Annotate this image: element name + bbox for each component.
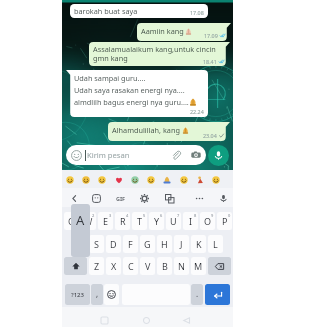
staticText: W xyxy=(84,215,93,227)
button[interactable]: Q xyxy=(64,212,79,230)
button[interactable]: X xyxy=(106,257,121,275)
button[interactable]: J xyxy=(174,235,189,253)
button[interactable]: O xyxy=(200,212,215,230)
button[interactable]: Recents xyxy=(97,313,111,327)
staticText: G xyxy=(144,238,151,250)
button[interactable]: P xyxy=(217,212,232,230)
button[interactable]: N xyxy=(174,257,189,275)
button[interactable]: U xyxy=(166,212,181,230)
staticText: V xyxy=(145,260,151,272)
button[interactable]: M xyxy=(191,257,206,275)
button[interactable]: Settings xyxy=(136,190,152,206)
button[interactable]: K xyxy=(191,235,206,253)
staticText: Alhamdulillah, kang xyxy=(112,125,180,135)
staticText: A xyxy=(76,211,85,229)
button[interactable]: G xyxy=(140,235,155,253)
button[interactable]: Voice input xyxy=(215,190,231,206)
button[interactable]: W xyxy=(81,212,96,230)
staticText: ?123 xyxy=(71,291,84,299)
staticText: 17.08 xyxy=(190,9,204,16)
button[interactable]: Assalamualaikum kang,untuk cincin gmn ka… xyxy=(89,42,230,66)
button[interactable]: Emoji xyxy=(145,174,156,185)
staticText: 22.24 xyxy=(190,108,204,115)
button[interactable]: Translate xyxy=(161,190,177,206)
button[interactable]: Emoji xyxy=(178,174,189,185)
button[interactable]: L xyxy=(208,235,223,253)
staticText: 3 xyxy=(109,213,112,218)
staticText: U xyxy=(170,215,177,227)
staticText: C xyxy=(128,260,134,272)
staticText: GIF xyxy=(116,195,126,202)
button[interactable]: Period xyxy=(191,284,203,305)
button[interactable]: Emoji xyxy=(64,174,75,185)
staticText: , xyxy=(96,288,99,299)
button[interactable]: Back xyxy=(66,190,82,206)
staticText: X xyxy=(111,260,117,272)
button[interactable]: Aamiin kang xyxy=(137,23,231,41)
staticText: 0 xyxy=(228,213,231,218)
staticText: 6 xyxy=(160,213,163,218)
button[interactable]: Emoji xyxy=(129,174,140,185)
staticText: L xyxy=(213,238,218,250)
button[interactable]: barokah buat saya xyxy=(70,4,208,18)
button[interactable]: Enter xyxy=(205,284,230,305)
button[interactable]: Voice message xyxy=(208,145,229,166)
button[interactable]: R xyxy=(115,212,130,230)
staticText: O xyxy=(204,215,212,227)
staticText: S xyxy=(94,238,99,250)
staticText: F xyxy=(128,238,133,250)
button[interactable]: F xyxy=(123,235,138,253)
button[interactable]: Stickers xyxy=(88,190,104,206)
button[interactable]: Emoji xyxy=(80,174,91,185)
button[interactable]: Comma xyxy=(91,284,103,305)
button[interactable]: Emoji xyxy=(194,174,205,185)
other: Camera xyxy=(191,150,201,160)
button[interactable]: Alhamdulillah, kang xyxy=(108,122,230,141)
button[interactable]: Shift xyxy=(64,257,87,275)
button[interactable]: Emoji xyxy=(161,174,172,185)
button[interactable]: Kirim pesan xyxy=(66,145,206,165)
staticText: 2 xyxy=(92,213,95,218)
button[interactable]: B xyxy=(157,257,172,275)
button[interactable]: S xyxy=(89,235,104,253)
button[interactable]: Y xyxy=(149,212,164,230)
staticText: Udah sampai guru.... xyxy=(74,73,146,83)
button[interactable]: Back xyxy=(179,313,193,327)
staticText: Udah saya rasakan energi nya.... xyxy=(74,85,185,95)
staticText: M xyxy=(194,260,203,272)
button[interactable]: GIF xyxy=(113,190,129,206)
staticText: 4 xyxy=(126,213,129,218)
button[interactable]: I xyxy=(183,212,198,230)
button[interactable]: C xyxy=(123,257,138,275)
button[interactable]: D xyxy=(106,235,121,253)
staticText: P xyxy=(222,215,228,227)
staticText: 23.04 xyxy=(203,132,217,139)
button[interactable]: T xyxy=(132,212,147,230)
button[interactable]: V xyxy=(140,257,155,275)
button[interactable]: Home xyxy=(139,313,153,327)
other: Attach xyxy=(171,150,181,160)
button[interactable]: Z xyxy=(89,257,104,275)
staticText: Aamiin kang xyxy=(141,26,184,36)
button[interactable]: Emoji xyxy=(113,174,124,185)
button[interactable]: H xyxy=(157,235,172,253)
button[interactable]: Emoji xyxy=(104,284,119,305)
staticText: R xyxy=(120,215,126,227)
staticText: 5 xyxy=(143,213,146,218)
staticText: 8 xyxy=(194,213,197,218)
staticText: barokah buat saya xyxy=(74,6,138,16)
button[interactable]: Backspace xyxy=(208,257,231,275)
button[interactable]: Symbols xyxy=(65,284,90,305)
button[interactable]: More xyxy=(191,190,207,206)
button[interactable]: E xyxy=(98,212,113,230)
button[interactable]: Udah sampai guru.... xyxy=(66,70,208,117)
staticText: almdlilh bagus energi nya guru.... xyxy=(74,97,189,107)
staticText: Kirim pesan xyxy=(87,150,130,160)
button[interactable]: Emoji xyxy=(96,174,107,185)
staticText: Y xyxy=(154,215,160,227)
staticText: J xyxy=(180,238,183,250)
button[interactable]: Emoji xyxy=(210,174,221,185)
